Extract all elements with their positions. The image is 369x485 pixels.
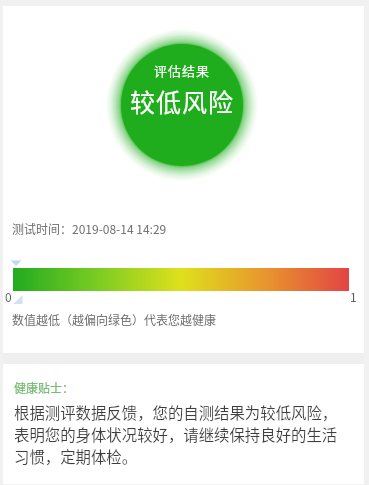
staticText: 评估结果 xyxy=(154,61,211,80)
button[interactable]: 健康贴士： xyxy=(3,364,364,484)
button[interactable]: 评估结果：较低风险 xyxy=(121,44,243,166)
staticText: 较低风险 xyxy=(130,83,235,119)
staticText: 测试时间：2019-08-14 14:29 xyxy=(12,220,167,237)
staticText: 健康贴士： xyxy=(14,379,75,396)
staticText: 0 xyxy=(5,288,12,305)
staticText: 根据测评数据反馈，您的自测结果为较低风险，表明您的身体状况较好，请继续保持良好的… xyxy=(14,401,340,467)
staticText: 数值越低（越偏向绿色）代表您越健康 xyxy=(12,311,217,328)
staticText: 1 xyxy=(350,288,357,305)
